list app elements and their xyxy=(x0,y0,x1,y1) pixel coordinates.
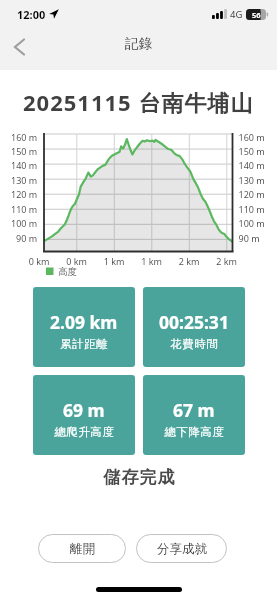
staticText: 12:00 xyxy=(17,7,46,22)
staticText: 花費時間 xyxy=(170,337,218,351)
button[interactable]: 分享成就 xyxy=(136,534,227,563)
staticText: 離開 xyxy=(70,541,95,557)
button[interactable]: 69 m xyxy=(33,375,135,455)
staticText: 總爬升高度 xyxy=(54,425,114,439)
staticText: 4G xyxy=(230,8,243,21)
staticText: 67 m xyxy=(173,398,215,422)
staticText: 2.09 km xyxy=(50,310,118,334)
staticText: 儲存完成 xyxy=(103,467,175,488)
button[interactable]: 離開 xyxy=(38,534,126,563)
staticText: 20251115 台南牛埔山 xyxy=(23,87,254,117)
staticText: 56 xyxy=(252,10,261,20)
button[interactable]: 00:25:31 xyxy=(143,287,245,367)
staticText: 00:25:31 xyxy=(159,310,229,334)
staticText: 總下降高度 xyxy=(164,425,224,439)
staticText: 記錄 xyxy=(125,35,152,52)
staticText: 累計距離 xyxy=(60,337,108,351)
staticText: 69 m xyxy=(63,398,105,422)
button[interactable]: 2.09 km xyxy=(33,287,135,367)
staticText: 分享成就 xyxy=(157,541,207,557)
button[interactable] xyxy=(4,35,34,59)
button[interactable]: 67 m xyxy=(143,375,245,455)
